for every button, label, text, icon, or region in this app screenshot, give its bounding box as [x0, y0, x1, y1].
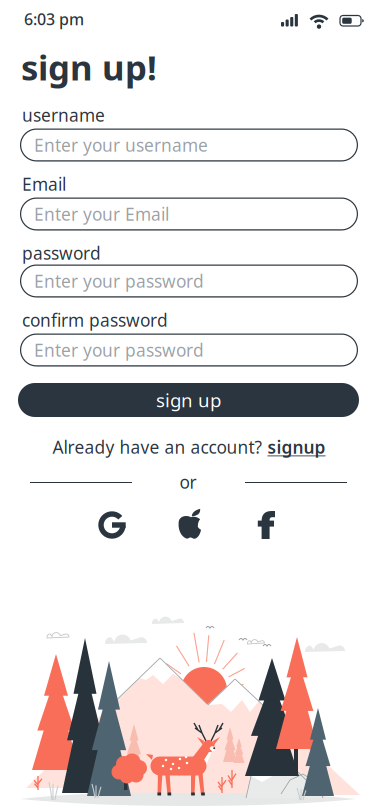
staticText: 6:03 pm	[24, 8, 84, 30]
staticText: sign up	[156, 388, 221, 412]
staticText: confirm password	[22, 308, 168, 331]
staticText: Enter your password	[34, 338, 204, 361]
staticText: sign up!	[21, 44, 157, 90]
staticText: Already have an account?	[52, 435, 267, 458]
staticText: or	[179, 470, 196, 493]
button[interactable]: Enter your password	[20, 333, 358, 366]
staticText: password	[22, 241, 101, 264]
staticText: Email	[22, 172, 66, 195]
button[interactable]: Sign up with Facebook	[244, 503, 288, 547]
button[interactable]: Sign up with Apple	[168, 505, 212, 549]
button[interactable]: Enter your Email	[20, 197, 358, 230]
staticText: username	[22, 103, 105, 126]
button[interactable]: Enter your password	[20, 264, 358, 297]
button[interactable]: sign up	[18, 383, 359, 417]
button[interactable]: signup	[267, 435, 325, 458]
button[interactable]: Sign up with Google	[90, 503, 134, 547]
staticText: Enter your username	[34, 133, 208, 156]
staticText: Enter your Email	[34, 202, 169, 225]
staticText: signup	[267, 435, 325, 458]
staticText: Enter your password	[34, 269, 204, 292]
button[interactable]: Enter your username	[20, 128, 358, 161]
